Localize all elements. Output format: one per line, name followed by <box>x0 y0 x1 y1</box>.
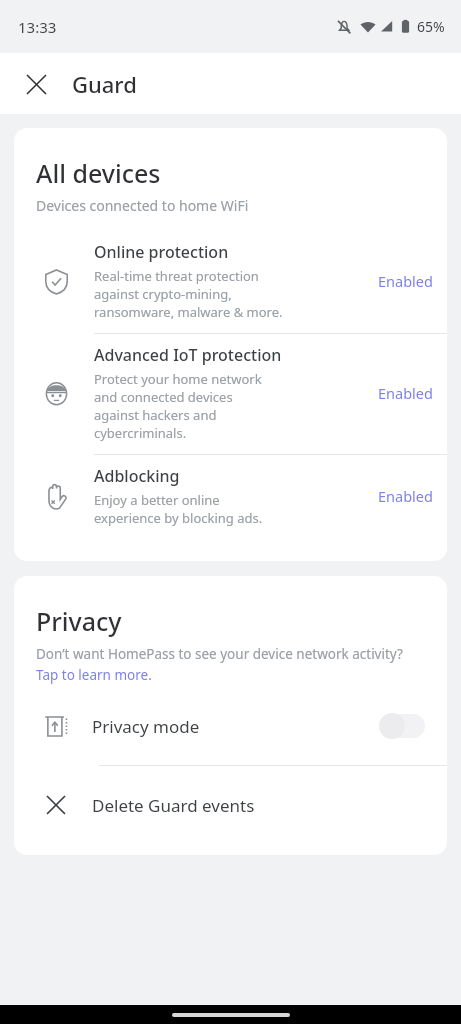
staticText: 13:33 <box>18 17 57 37</box>
other: Advanced IoT protection <box>36 373 76 413</box>
staticText: Guard <box>72 69 137 99</box>
staticText: Privacy <box>36 604 122 638</box>
button[interactable]: Close <box>17 65 55 103</box>
staticText: Online protection <box>94 241 229 263</box>
button[interactable]: Delete Guard events <box>14 779 447 831</box>
staticText: Enabled <box>378 271 433 291</box>
button[interactable]: Tap to learn more. <box>36 666 152 684</box>
other: Online protection <box>36 261 76 301</box>
button[interactable]: Adblocking <box>14 455 447 539</box>
button[interactable]: Privacy mode <box>14 700 447 752</box>
staticText: Enjoy a better online experience by bloc… <box>94 491 263 527</box>
other: Adblocking <box>36 476 76 516</box>
staticText: Advanced IoT protection <box>94 344 282 366</box>
staticText: Real-time threat protection against cryp… <box>94 267 283 321</box>
staticText: Devices connected to home WiFi <box>36 196 249 215</box>
staticText: All devices <box>36 156 161 190</box>
button[interactable]: Online protection <box>14 231 447 333</box>
other: Privacy mode <box>36 706 76 746</box>
staticText: Enabled <box>378 486 433 506</box>
staticText: Don’t want HomePass to see your device n… <box>36 645 403 663</box>
staticText: Privacy mode <box>92 715 379 738</box>
staticText: Tap to learn more. <box>36 666 152 684</box>
staticText: Enabled <box>378 383 433 403</box>
staticText: 65% <box>417 17 445 36</box>
staticText: Protect your home network and connected … <box>94 370 262 442</box>
button[interactable]: Advanced IoT protection <box>14 334 447 454</box>
staticText: Adblocking <box>94 465 180 487</box>
staticText: Delete Guard events <box>92 794 255 817</box>
